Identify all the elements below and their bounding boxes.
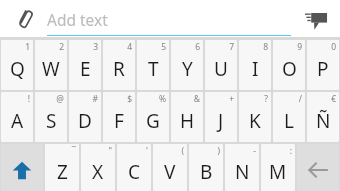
staticText: D — [78, 108, 92, 134]
staticText: K — [249, 108, 261, 134]
button[interactable]: € — [307, 92, 339, 142]
staticText: Q — [10, 56, 25, 82]
staticText: R — [113, 56, 125, 82]
staticText: E — [80, 56, 91, 82]
button[interactable]: - — [225, 144, 259, 191]
button[interactable]: ' — [117, 144, 151, 191]
button[interactable]: : — [261, 144, 295, 191]
staticText: 7 — [229, 41, 234, 53]
staticText: $ — [127, 93, 132, 105]
button[interactable]: ¯ — [45, 144, 79, 191]
staticText: J — [218, 108, 224, 134]
staticText: / — [298, 93, 302, 105]
button[interactable]: 5 — [137, 40, 169, 90]
staticText: 6 — [195, 41, 200, 53]
staticText: ¯ — [71, 145, 76, 157]
button[interactable]: ? — [239, 92, 271, 142]
staticText: ! — [27, 93, 30, 105]
staticText: O — [282, 56, 297, 82]
staticText: W — [42, 56, 60, 82]
button[interactable]: 7 — [205, 40, 237, 90]
staticText: B — [200, 159, 213, 185]
staticText: ? — [264, 93, 268, 105]
button[interactable]: 9 — [273, 40, 305, 90]
staticText: & — [193, 93, 200, 105]
staticText: S — [46, 108, 57, 134]
button[interactable]: % — [137, 92, 169, 142]
button[interactable]: ) — [189, 144, 223, 191]
button[interactable]: 4 — [103, 40, 135, 90]
staticText: Add text — [47, 9, 108, 30]
button[interactable]: 8 — [239, 40, 271, 90]
button[interactable]: 0 — [307, 40, 339, 90]
staticText: % — [158, 93, 166, 105]
staticText: A — [11, 108, 24, 134]
button[interactable]: # — [69, 92, 101, 142]
staticText: U — [214, 56, 228, 82]
staticText: N — [235, 159, 250, 185]
staticText: L — [284, 108, 294, 134]
button[interactable]: ! — [1, 92, 33, 142]
staticText: 0 — [331, 41, 336, 53]
staticText: C — [128, 159, 141, 185]
staticText: 4 — [127, 41, 132, 53]
staticText: 1 — [25, 41, 30, 53]
staticText: € — [331, 93, 336, 105]
staticText: : — [289, 145, 292, 157]
button[interactable]: / — [273, 92, 305, 142]
button[interactable]: + — [205, 92, 237, 142]
button[interactable]: 1 — [1, 40, 33, 90]
button[interactable]: $ — [103, 92, 135, 142]
staticText: ' — [146, 145, 148, 157]
staticText: V — [164, 159, 176, 185]
staticText: T — [148, 56, 159, 82]
staticText: ) — [217, 145, 220, 157]
staticText: Ñ — [316, 108, 331, 134]
button[interactable]: @ — [35, 92, 67, 142]
button[interactable]: Attach file — [13, 5, 40, 32]
staticText: H — [180, 108, 195, 134]
staticText: M — [269, 159, 287, 185]
staticText: I — [252, 56, 259, 82]
staticText: # — [92, 93, 98, 105]
staticText: P — [317, 56, 329, 82]
button[interactable]: 6 — [171, 40, 203, 90]
button[interactable]: Add text — [47, 0, 291, 37]
button[interactable]: 2 — [35, 40, 67, 90]
staticText: 3 — [93, 41, 98, 53]
staticText: @ — [56, 93, 64, 105]
staticText: Z — [57, 159, 68, 185]
button[interactable]: Send message — [301, 4, 331, 34]
staticText: 2 — [59, 41, 64, 53]
staticText: + — [229, 93, 234, 105]
staticText: 5 — [161, 41, 166, 53]
staticText: " — [108, 145, 112, 157]
button[interactable]: Backspace — [297, 144, 339, 191]
button[interactable]: 3 — [69, 40, 101, 90]
staticText: ( — [181, 145, 184, 157]
staticText: 9 — [297, 41, 302, 53]
staticText: - — [253, 145, 256, 157]
staticText: F — [114, 108, 124, 134]
button[interactable]: Shift — [1, 144, 43, 191]
button[interactable]: " — [81, 144, 115, 191]
staticText: G — [146, 108, 160, 134]
staticText: 8 — [263, 41, 268, 53]
staticText: X — [92, 159, 104, 185]
button[interactable]: & — [171, 92, 203, 142]
button[interactable]: ( — [153, 144, 187, 191]
staticText: Y — [182, 56, 193, 82]
